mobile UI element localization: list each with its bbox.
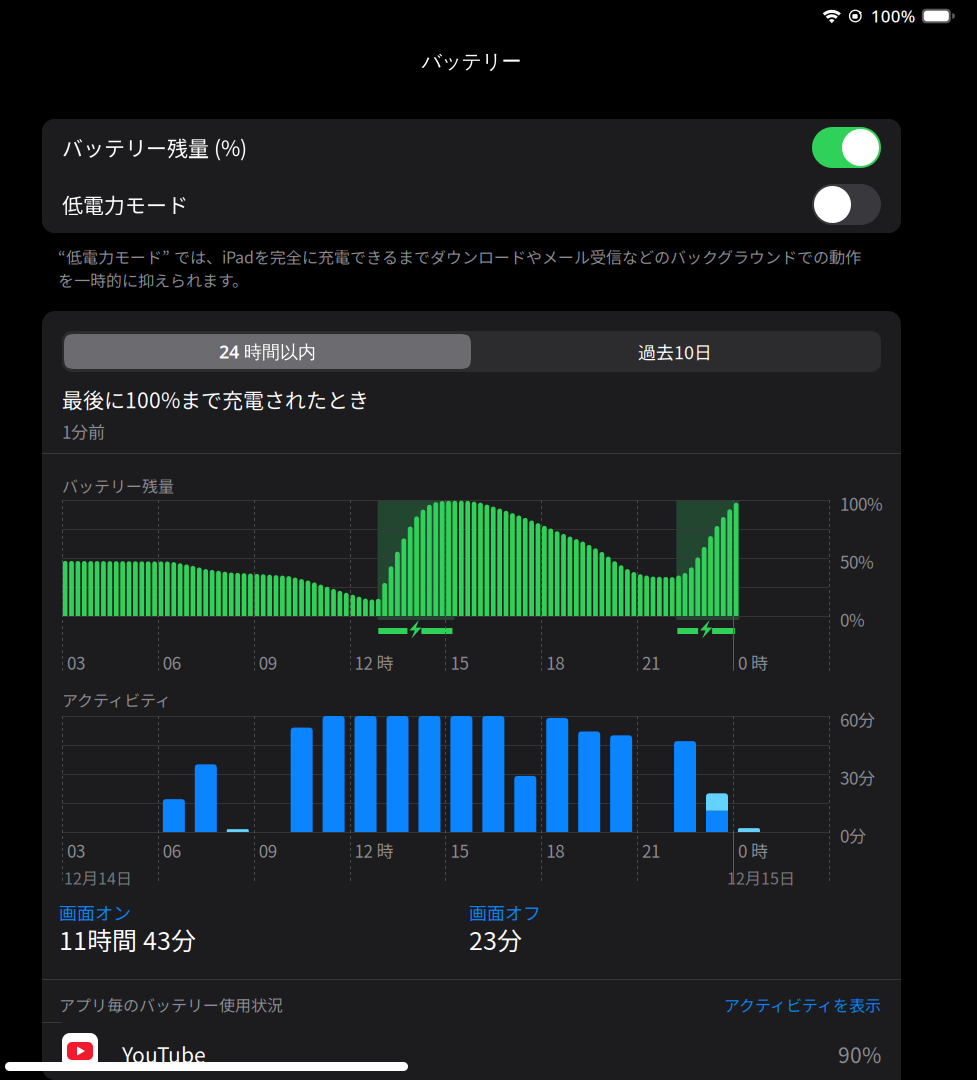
- staticText: YouTube: [122, 1039, 206, 1069]
- staticText: 最後に100%まで充電されたとき: [62, 384, 369, 414]
- staticText: アクティビティを表示: [724, 993, 881, 1016]
- button[interactable]: アクティビティを表示: [0, 993, 881, 1016]
- staticText: 0%: [840, 607, 865, 632]
- button[interactable]: 低電力モード: [42, 176, 901, 233]
- staticText: 100%: [840, 491, 883, 516]
- staticText: 60分: [840, 707, 875, 732]
- staticText: 過去10日: [638, 338, 712, 365]
- staticText: 画面オフ: [469, 899, 541, 925]
- staticText: 低電力モード: [62, 189, 188, 219]
- staticText: 23分: [469, 921, 522, 957]
- staticText: 21: [642, 838, 660, 863]
- staticText: 90%: [838, 1039, 881, 1069]
- staticText: 03: [67, 650, 85, 675]
- staticText: 18: [546, 650, 564, 675]
- staticText: 15: [450, 650, 468, 675]
- staticText: 15: [450, 838, 468, 863]
- staticText: バッテリー残量: [62, 474, 174, 497]
- staticText: 12 時: [355, 650, 394, 675]
- staticText: 18: [546, 838, 564, 863]
- staticText: 1分前: [62, 419, 105, 444]
- staticText: “低電力モード” では、iPadを完全に充電できるまでダウンロードやメール受信な…: [58, 245, 861, 291]
- staticText: 24 時間以内: [219, 339, 316, 364]
- button[interactable]: 過去10日: [471, 334, 879, 369]
- staticText: 06: [163, 650, 181, 675]
- staticText: 100%: [871, 4, 915, 28]
- staticText: 画面オン: [59, 899, 131, 925]
- staticText: 06: [163, 838, 181, 863]
- staticText: 12 時: [355, 838, 394, 863]
- staticText: 03: [67, 838, 85, 863]
- staticText: 30分: [840, 765, 875, 790]
- staticText: 12月15日: [727, 866, 795, 889]
- staticText: バッテリー: [421, 49, 521, 74]
- staticText: 0分: [840, 823, 866, 848]
- staticText: アクティビティ: [62, 688, 171, 711]
- staticText: バッテリー残量 (%): [62, 132, 247, 162]
- staticText: 12月14日: [64, 866, 132, 889]
- button[interactable]: バッテリー残量 (%): [42, 119, 901, 176]
- staticText: 11時間 43分: [59, 921, 196, 957]
- staticText: 21: [642, 650, 660, 675]
- button[interactable]: YouTube: [62, 1022, 901, 1080]
- staticText: 09: [259, 838, 277, 863]
- button[interactable]: 24 時間以内: [64, 334, 471, 369]
- staticText: 50%: [840, 549, 874, 574]
- staticText: 0 時: [738, 838, 768, 863]
- staticText: 0 時: [738, 650, 768, 675]
- staticText: 09: [259, 650, 277, 675]
- staticText: アプリ毎のバッテリー使用状況: [59, 993, 283, 1016]
